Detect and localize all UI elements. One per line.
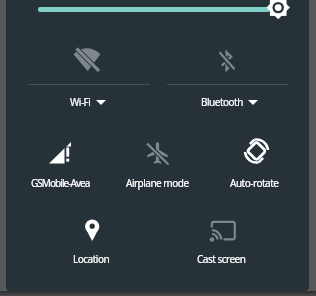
button[interactable] — [10, 124, 110, 196]
button[interactable] — [28, 0, 294, 20]
staticText: Cast screen — [197, 252, 246, 266]
staticText: GSMobile-Avea — [31, 176, 90, 190]
button[interactable] — [36, 202, 146, 274]
staticText: Wi-Fi — [70, 95, 91, 109]
button[interactable] — [16, 26, 156, 112]
staticText: Location — [73, 252, 110, 266]
button[interactable] — [164, 202, 278, 274]
button[interactable] — [110, 124, 205, 196]
staticText: Airplane mode — [126, 176, 189, 190]
button[interactable] — [206, 124, 302, 196]
staticText: Auto-rotate — [230, 176, 279, 190]
staticText: Bluetooth — [201, 95, 243, 109]
button[interactable] — [160, 26, 300, 112]
